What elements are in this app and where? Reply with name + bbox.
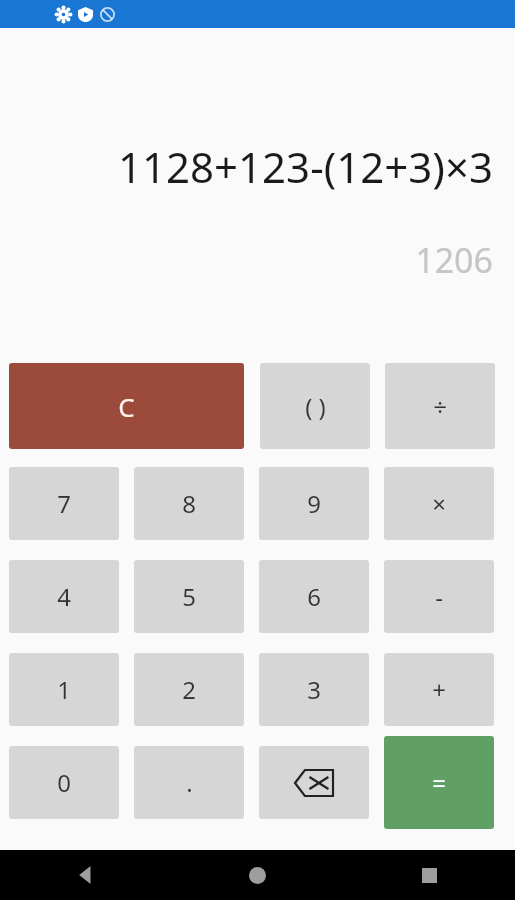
staticText: 2 — [182, 673, 196, 706]
staticText: . — [186, 766, 193, 799]
button[interactable]: Recent apps — [343, 850, 515, 900]
staticText: + — [432, 673, 446, 706]
button[interactable]: 0 — [9, 746, 119, 819]
button[interactable]: C — [9, 363, 244, 449]
button[interactable]: × — [384, 467, 494, 540]
button[interactable]: . — [134, 746, 244, 819]
button[interactable]: 2 — [134, 653, 244, 726]
staticText: ÷ — [433, 390, 447, 423]
staticText: 6 — [307, 580, 321, 613]
button[interactable]: 6 — [259, 560, 369, 633]
button[interactable]: 4 — [9, 560, 119, 633]
staticText: 3 — [307, 673, 321, 706]
button[interactable]: 7 — [9, 467, 119, 540]
button[interactable]: 3 — [259, 653, 369, 726]
staticText: 9 — [307, 487, 321, 520]
staticText: × — [432, 487, 446, 520]
button[interactable]: ( ) — [260, 363, 370, 449]
staticText: C — [118, 389, 135, 424]
staticText: ( ) — [305, 390, 326, 423]
staticText: 4 — [57, 580, 71, 613]
button[interactable]: - — [384, 560, 494, 633]
button[interactable]: Backspace — [259, 746, 369, 819]
staticText: 5 — [182, 580, 196, 613]
button[interactable]: + — [384, 653, 494, 726]
staticText: - — [435, 580, 443, 613]
button[interactable]: 8 — [134, 467, 244, 540]
staticText: = — [432, 766, 446, 799]
staticText: 1 — [57, 673, 71, 706]
staticText: 1206 — [0, 237, 493, 283]
staticText: 0 — [57, 766, 71, 799]
button[interactable]: 1 — [9, 653, 119, 726]
button[interactable]: ÷ — [385, 363, 495, 449]
button[interactable]: = — [384, 736, 494, 829]
button[interactable]: 9 — [259, 467, 369, 540]
staticText: 1128+123-(12+3)×3 — [0, 138, 493, 195]
staticText: 7 — [57, 487, 71, 520]
staticText: 8 — [182, 487, 196, 520]
button[interactable]: Home — [171, 850, 343, 900]
button[interactable]: 5 — [134, 560, 244, 633]
button[interactable]: Back — [0, 850, 171, 900]
